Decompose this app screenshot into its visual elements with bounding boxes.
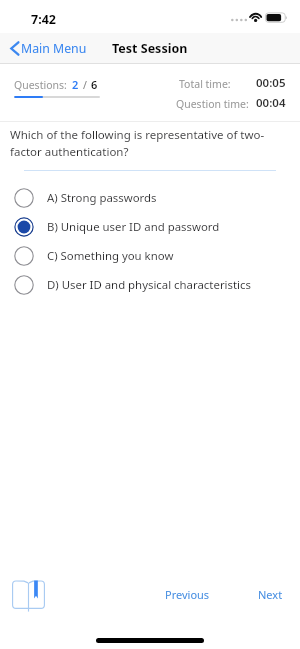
staticText: 6: [91, 77, 98, 92]
button[interactable]: Previous: [155, 579, 220, 610]
button[interactable]: Next: [248, 579, 293, 610]
staticText: Question time:: [176, 97, 249, 111]
button[interactable]: D) User ID and physical characteristics: [0, 270, 300, 299]
staticText: A) Strong passwords: [47, 190, 157, 206]
button[interactable]: Bookmarks: [12, 580, 45, 610]
button[interactable]: A) Strong passwords: [0, 183, 300, 212]
button[interactable]: B) Unique user ID and password: [0, 212, 300, 241]
staticText: 7:42: [31, 11, 56, 28]
staticText: B) Unique user ID and password: [47, 219, 220, 235]
button[interactable]: C) Something you know: [0, 241, 300, 270]
staticText: 00:04: [256, 95, 286, 111]
staticText: D) User ID and physical characteristics: [47, 277, 251, 293]
staticText: /: [83, 78, 87, 92]
staticText: Questions:: [14, 78, 67, 92]
staticText: Test Session: [112, 40, 188, 57]
staticText: Total time:: [179, 77, 231, 91]
staticText: 00:05: [256, 75, 286, 91]
staticText: Which of the following is representative…: [10, 127, 286, 159]
staticText: C) Something you know: [47, 248, 174, 264]
staticText: 2: [72, 77, 79, 92]
button[interactable]: Main Menu: [0, 37, 95, 60]
staticText: Main Menu: [21, 40, 87, 57]
